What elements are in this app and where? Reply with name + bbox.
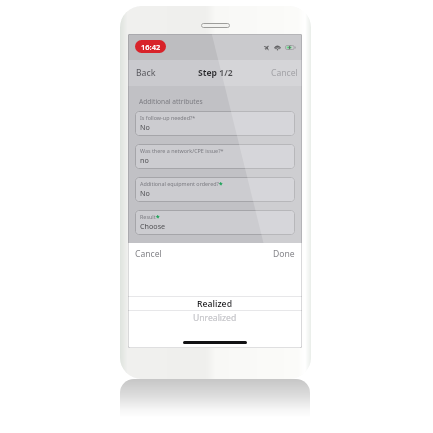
other: Battery charging — [285, 45, 296, 50]
staticText: Was there a network/CPE issue?* — [140, 147, 224, 154]
button[interactable]: Done — [271, 246, 297, 262]
button[interactable]: Unrealized — [128, 311, 302, 324]
staticText: Step 1/2 — [198, 67, 233, 79]
button[interactable]: Cancel — [133, 246, 164, 262]
staticText: Is follow-up needed?* — [140, 114, 196, 121]
button[interactable]: Back — [128, 61, 164, 85]
staticText: Choose — [140, 221, 166, 231]
staticText: Realized — [197, 298, 233, 310]
staticText: Done — [273, 248, 295, 260]
other: Aeroplane mode — [264, 45, 270, 50]
staticText: * — [219, 180, 223, 189]
staticText: 16:42 — [141, 42, 161, 52]
staticText: No — [140, 122, 150, 132]
staticText: Back — [136, 67, 156, 79]
staticText: Result — [140, 213, 156, 220]
staticText: no — [140, 155, 149, 165]
staticText: Additional attributes — [139, 97, 203, 106]
other: Home indicator — [183, 341, 247, 344]
button[interactable]: Realized — [128, 297, 302, 310]
staticText: Cancel — [135, 248, 162, 260]
staticText: * — [156, 213, 160, 222]
button[interactable]: Additional equipment ordered? — [135, 177, 295, 202]
other: Wi-Fi — [274, 44, 281, 51]
staticText: Unrealized — [193, 312, 237, 324]
staticText: No — [140, 188, 150, 198]
button[interactable]: Was there a network/CPE issue?* — [135, 144, 295, 169]
button[interactable]: Is follow-up needed?* — [135, 111, 295, 136]
staticText: Cancel — [271, 67, 298, 79]
button[interactable]: Result — [135, 210, 295, 235]
staticText: Additional equipment ordered? — [140, 180, 219, 187]
button[interactable]: Cancel — [263, 61, 302, 85]
button[interactable]: Recording, 16:42 — [135, 40, 166, 53]
